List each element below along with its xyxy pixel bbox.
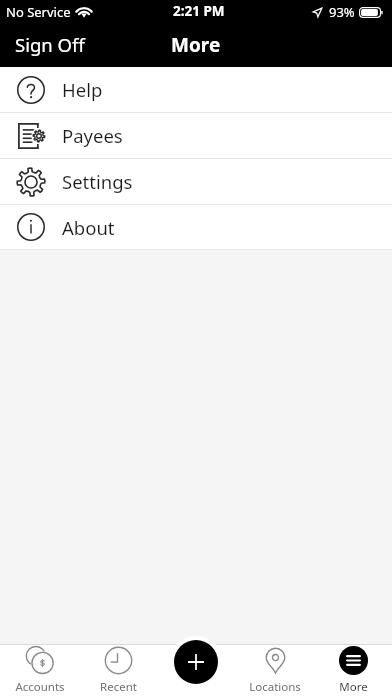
button[interactable]: Help [0,67,392,113]
staticText: Help [62,77,103,102]
staticText: Accounts [15,679,65,695]
staticText: Payees [62,123,123,148]
staticText: 2:21 PM [173,2,225,20]
button[interactable]: Add new [174,640,218,684]
staticText: More [339,679,368,695]
staticText: 93% [329,3,355,21]
button[interactable]: Sign Off [0,25,99,64]
button[interactable]: Accounts [0,644,79,696]
button[interactable]: More [314,644,392,696]
staticText: Recent [100,679,137,695]
staticText: About [62,215,115,240]
button[interactable]: Settings [0,159,392,205]
button[interactable]: About [0,205,392,250]
button[interactable]: Payees [0,113,392,159]
staticText: Settings [62,169,133,194]
button[interactable]: Locations [236,644,314,696]
staticText: More [171,32,221,58]
button[interactable]: Recent [79,644,158,696]
staticText: Locations [249,679,301,695]
staticText: Sign Off [15,32,85,57]
staticText: No Service [6,3,71,21]
